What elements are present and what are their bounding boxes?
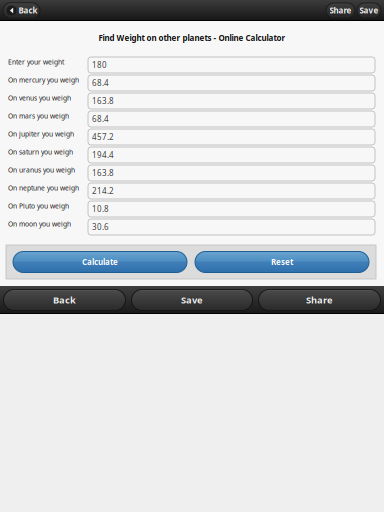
- staticText: Reset: [271, 257, 293, 267]
- staticText: 163.8: [92, 168, 114, 178]
- button[interactable]: Save: [357, 3, 381, 18]
- button[interactable]: Share: [258, 289, 380, 310]
- staticText: Find Weight on other planets - Online Ca…: [98, 33, 285, 43]
- button[interactable]: Reset: [195, 251, 369, 272]
- staticText: Back: [53, 294, 76, 306]
- staticText: 163.8: [92, 96, 114, 106]
- staticText: Enter your weight: [8, 58, 64, 66]
- staticText: 68.4: [92, 78, 109, 88]
- staticText: On mars you weigh: [8, 112, 69, 120]
- staticText: Share: [306, 294, 333, 306]
- staticText: Save: [181, 294, 203, 306]
- staticText: Share: [329, 5, 351, 16]
- staticText: On saturn you weigh: [8, 148, 73, 156]
- button[interactable]: Save: [131, 289, 252, 310]
- staticText: Save: [359, 5, 378, 16]
- staticText: 214.2: [92, 186, 114, 196]
- staticText: 180: [92, 60, 107, 70]
- button[interactable]: Share: [326, 3, 355, 18]
- staticText: On jupiter you weigh: [8, 130, 74, 138]
- staticText: 194.4: [92, 150, 114, 160]
- staticText: 30.6: [92, 222, 109, 232]
- button[interactable]: Calculate: [13, 251, 187, 272]
- staticText: On neptune you weigh: [8, 184, 79, 192]
- staticText: 68.4: [92, 114, 109, 124]
- button[interactable]: Back: [3, 289, 125, 310]
- staticText: Calculate: [82, 257, 118, 267]
- staticText: On mercury you weigh: [8, 76, 79, 84]
- staticText: On moon you weigh: [8, 220, 71, 228]
- staticText: On Pluto you weigh: [8, 202, 69, 210]
- staticText: 457.2: [92, 132, 114, 142]
- staticText: Back: [18, 5, 37, 16]
- staticText: On uranus you weigh: [8, 166, 75, 174]
- staticText: On venus you weigh: [8, 94, 71, 102]
- button[interactable]: Back: [3, 3, 40, 18]
- staticText: 10.8: [92, 204, 109, 214]
